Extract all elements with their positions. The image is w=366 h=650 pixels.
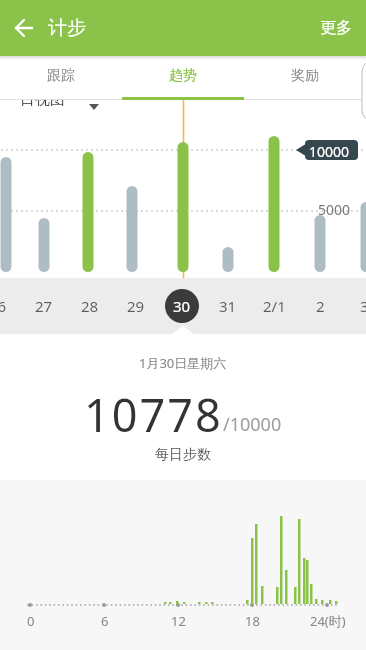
staticText: 18	[245, 612, 260, 630]
staticText: 10000	[309, 142, 350, 161]
staticText: 日视图	[20, 90, 65, 109]
button[interactable]: 趋势	[122, 54, 244, 98]
staticText: 2/1	[263, 296, 286, 316]
button[interactable]: 26	[0, 286, 18, 326]
button[interactable]: 2/1	[254, 286, 294, 326]
staticText: 6	[101, 612, 109, 630]
staticText: 每日步数	[155, 446, 211, 464]
staticText: 奖励	[291, 67, 319, 85]
staticText: 2	[316, 296, 325, 316]
button[interactable]	[0, 0, 48, 56]
staticText: 3	[360, 296, 366, 316]
button[interactable]: 更多	[306, 0, 366, 56]
staticText: 27	[35, 296, 53, 316]
button[interactable]: 奖励	[244, 54, 366, 98]
staticText: 1月30日星期六	[139, 354, 227, 372]
button[interactable]: 28	[70, 286, 110, 326]
staticText: 31	[219, 296, 237, 316]
button[interactable]: 3	[344, 286, 366, 326]
staticText: 跟踪	[47, 67, 75, 85]
button[interactable]: 跟踪	[0, 54, 122, 98]
button[interactable]: 31	[208, 286, 248, 326]
staticText: 12	[171, 612, 186, 630]
staticText: 10778	[84, 384, 223, 445]
staticText: 5000	[318, 200, 351, 219]
staticText: 29	[127, 296, 145, 316]
button[interactable]: 2	[300, 286, 340, 326]
button[interactable]: 27	[24, 286, 64, 326]
staticText: 30	[173, 296, 191, 316]
staticText: 趋势	[169, 67, 197, 85]
button[interactable]: 29	[116, 286, 156, 326]
button[interactable]: 30	[165, 289, 199, 323]
staticText: /10000	[223, 412, 282, 437]
staticText: 更多	[320, 18, 352, 38]
staticText: 24(时)	[310, 612, 346, 630]
staticText: 26	[0, 296, 7, 316]
staticText: 计步	[48, 16, 86, 40]
staticText: 28	[81, 296, 99, 316]
staticText: 0	[27, 612, 35, 630]
